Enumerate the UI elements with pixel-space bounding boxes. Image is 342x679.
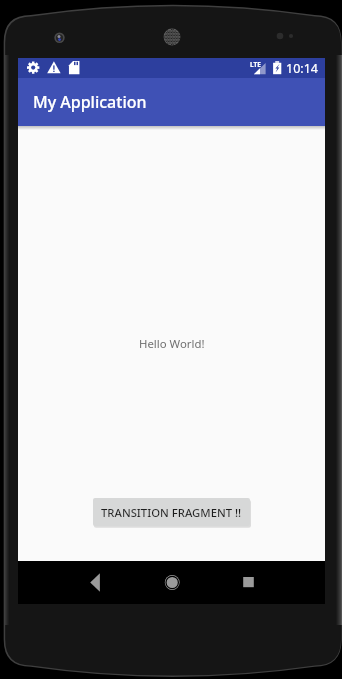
staticText: 10:14 [286, 60, 318, 77]
button[interactable]: TRANSITION FRAGMENT !! [93, 498, 250, 526]
staticText: LTE [250, 60, 261, 69]
staticText: My Application [33, 91, 147, 113]
button[interactable]: Home [156, 566, 189, 599]
staticText: TRANSITION FRAGMENT !! [101, 505, 242, 520]
button[interactable]: Back [79, 566, 112, 599]
staticText: Hello World! [139, 336, 205, 352]
button[interactable]: Recent apps [232, 566, 265, 599]
